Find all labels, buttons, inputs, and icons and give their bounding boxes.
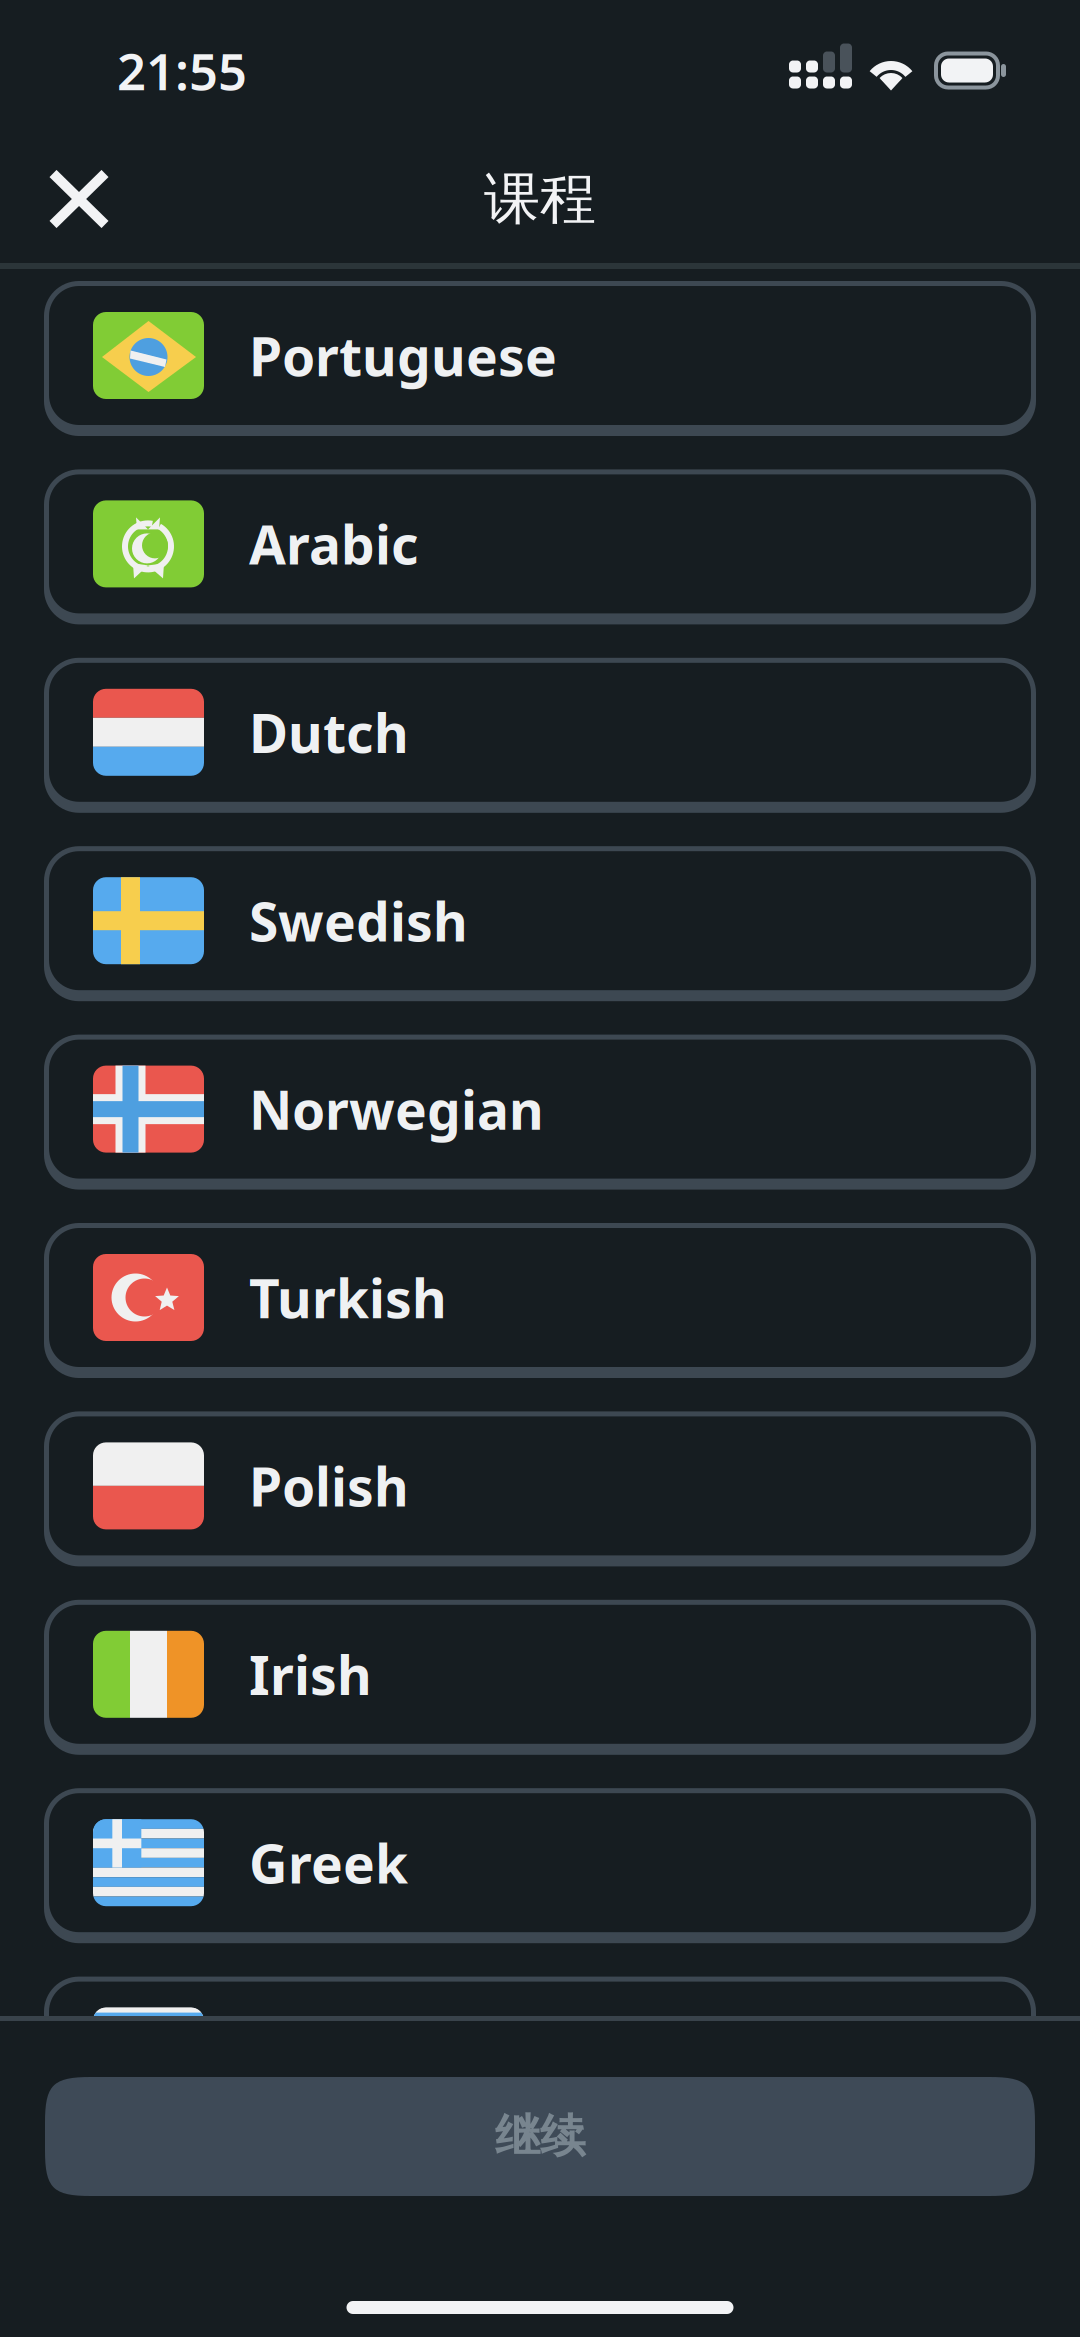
staticText: Turkish	[249, 1262, 447, 1333]
staticText: Swedish	[249, 885, 468, 956]
button[interactable]: Turkish	[44, 1223, 1036, 1378]
staticText: Hebrew	[249, 2016, 456, 2086]
button[interactable]: Greek	[44, 1788, 1036, 1943]
staticText: Portuguese	[249, 320, 557, 391]
button[interactable]: Dutch	[44, 658, 1036, 813]
staticText: 课程	[484, 165, 596, 233]
button[interactable]: Norwegian	[44, 1035, 1036, 1190]
staticText: Irish	[249, 1639, 372, 1710]
button[interactable]: Portuguese	[44, 281, 1036, 436]
staticText: 21:55	[117, 37, 247, 104]
staticText: Arabic	[249, 508, 419, 579]
button[interactable]: Close	[24, 144, 134, 253]
staticText: Greek	[249, 1827, 408, 1898]
staticText: Norwegian	[249, 1074, 544, 1144]
button[interactable]: Swedish	[44, 846, 1036, 1001]
button[interactable]: Irish	[44, 1600, 1036, 1755]
button[interactable]: Hebrew	[44, 1977, 1036, 2132]
staticText: Dutch	[249, 697, 409, 768]
staticText: Polish	[249, 1450, 409, 1521]
button[interactable]: 继续	[45, 2077, 1035, 2196]
button[interactable]: Arabic	[44, 469, 1036, 624]
button[interactable]: Polish	[44, 1411, 1036, 1566]
staticText: 继续	[495, 2109, 585, 2164]
